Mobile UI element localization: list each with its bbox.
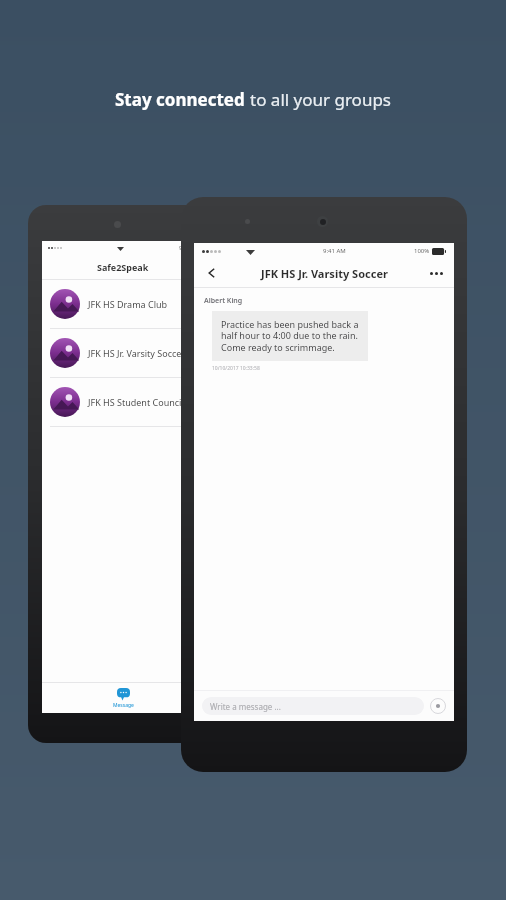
staticText: JFK HS Student Council (88, 396, 184, 408)
staticText: 10/10/2017 10:33:58 (212, 365, 260, 372)
button[interactable]: Back (202, 263, 222, 283)
staticText: Practice has been pushed back a half hou… (221, 318, 359, 354)
staticText: JFK HS Drama Club (88, 298, 168, 310)
staticText: 9:41 AM (323, 247, 346, 255)
button[interactable]: More options (426, 263, 446, 283)
staticText: JFK HS Jr. Varsity Soccer (88, 347, 186, 359)
button[interactable]: JFK HS Student Council (42, 378, 204, 427)
staticText: Message (113, 702, 134, 709)
staticText: Albert King (204, 296, 243, 306)
button[interactable]: JFK HS Jr. Varsity Soccer (42, 329, 204, 378)
button[interactable]: JFK HS Drama Club (42, 280, 204, 329)
staticText: JFK HS Jr. Varsity Soccer (261, 266, 388, 281)
staticText: Safe2Speak (97, 261, 149, 273)
staticText: 100% (414, 247, 430, 255)
staticText: Stay connected (115, 88, 250, 111)
button[interactable]: Add attachment (430, 698, 446, 714)
button[interactable]: Message (42, 683, 204, 713)
staticText: Write a message ... (210, 701, 281, 712)
staticText: 9:41 AM (179, 245, 198, 252)
staticText: to all your groups (250, 88, 391, 111)
button[interactable]: Write a message ... (202, 697, 424, 715)
